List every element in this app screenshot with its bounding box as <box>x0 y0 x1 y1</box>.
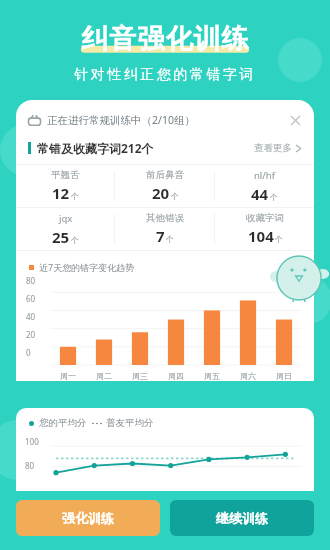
staticText: 正在进行常规训练中（2/10组） <box>47 113 195 127</box>
staticText: 继续训练 <box>216 510 268 526</box>
staticText: 强化训练 <box>62 510 114 526</box>
staticText: 周一 <box>60 371 76 381</box>
button[interactable]: 强化训练 <box>16 500 160 536</box>
staticText: 20 <box>152 183 170 203</box>
staticText: 0 <box>26 347 31 358</box>
staticText: 针对性纠正您的常错字词 <box>0 66 330 84</box>
staticText: 纠音强化训练 <box>81 22 249 56</box>
staticText: 25 <box>52 227 70 247</box>
staticText: 60 <box>26 293 36 304</box>
staticText: 个 <box>71 191 79 201</box>
button[interactable]: 关闭 <box>286 111 304 129</box>
staticText: 104 <box>248 226 274 246</box>
staticText: 您的平均分 <box>39 417 87 429</box>
staticText: 周六 <box>240 371 256 381</box>
staticText: 7 <box>156 226 165 246</box>
staticText: 收藏字词 <box>246 212 284 224</box>
button[interactable]: 继续训练 <box>170 500 314 536</box>
staticText: 80 <box>26 275 36 286</box>
button[interactable]: nl/hf <box>215 165 314 207</box>
staticText: 近7天您的错字变化趋势 <box>39 261 135 273</box>
staticText: 周五 <box>204 371 220 381</box>
staticText: 44 <box>251 184 269 204</box>
staticText: 个 <box>166 234 174 244</box>
staticText: 40 <box>26 311 36 322</box>
button[interactable]: 平翘舌 <box>16 165 114 207</box>
button[interactable]: 其他错误 <box>115 208 214 250</box>
staticText: 周三 <box>132 371 148 381</box>
staticText: 普友平均分 <box>106 417 154 429</box>
button[interactable]: 常错及收藏字词212个 <box>28 140 302 156</box>
staticText: 平翘舌 <box>51 169 80 181</box>
staticText: 个 <box>275 234 283 244</box>
button[interactable]: jqx <box>16 208 114 250</box>
staticText: 查看更多 <box>254 142 292 154</box>
staticText: nl/hf <box>254 169 275 182</box>
button[interactable]: 收藏字词 <box>215 208 314 250</box>
staticText: 100 <box>25 436 39 447</box>
staticText: 常错及收藏字词212个 <box>37 140 154 156</box>
button[interactable]: 前后鼻音 <box>115 165 214 207</box>
staticText: jqx <box>59 212 73 225</box>
staticText: 个 <box>171 191 179 201</box>
staticText: 80 <box>25 460 35 471</box>
staticText: 个 <box>71 235 79 245</box>
staticText: 周二 <box>96 371 112 381</box>
staticText: 周日 <box>276 371 292 381</box>
staticText: 20 <box>26 329 36 340</box>
staticText: 前后鼻音 <box>146 169 184 181</box>
staticText: 个 <box>270 192 278 202</box>
staticText: 12 <box>52 183 70 203</box>
staticText: 周四 <box>168 371 184 381</box>
staticText: 其他错误 <box>146 212 184 224</box>
